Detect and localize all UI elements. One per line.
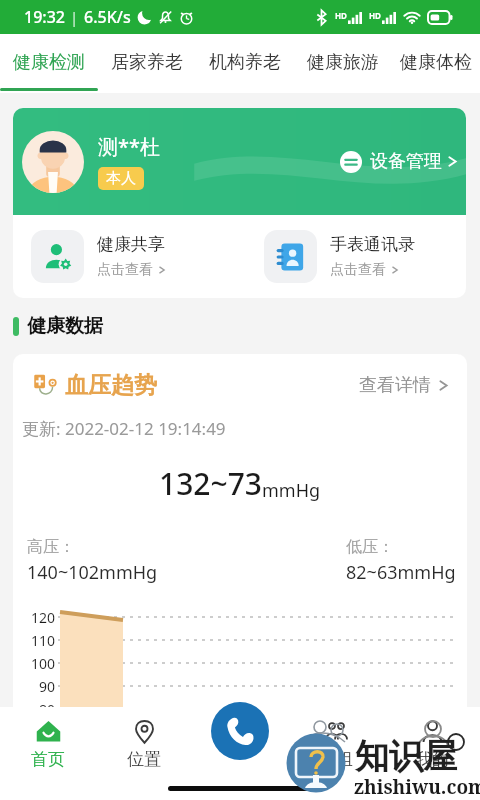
staticText: 132~73	[159, 463, 262, 504]
staticText: 首页	[31, 749, 65, 770]
staticText: 测**杜	[98, 133, 160, 160]
button[interactable]: 居家养老	[98, 34, 196, 93]
staticText: 点击查看	[97, 261, 153, 279]
staticText: 居家养老	[111, 51, 183, 74]
staticText: zhishiwu.com	[354, 774, 480, 800]
staticText: 健康检测	[13, 51, 85, 74]
button[interactable]: 位置	[96, 707, 192, 777]
staticText: 19:32	[24, 6, 65, 28]
staticText: 位置	[127, 749, 161, 770]
button[interactable]: 设备管理	[340, 150, 458, 173]
staticText: 更新: 2022-02-12 19:14:49	[22, 417, 226, 440]
staticText: 90	[39, 677, 56, 696]
staticText: 我的	[415, 749, 449, 770]
staticText: HD	[335, 10, 347, 21]
staticText: 手表通讯录	[330, 234, 415, 255]
staticText: 6.5K/s	[84, 6, 131, 28]
button[interactable]: 机构养老	[196, 34, 294, 93]
staticText: 查看详情	[359, 374, 431, 397]
staticText: 82~63mmHg	[346, 560, 456, 585]
staticText: 血压趋势	[65, 371, 157, 400]
button[interactable]: Call	[211, 702, 269, 760]
button[interactable]: 我的	[384, 707, 480, 777]
staticText: HD	[369, 10, 381, 21]
staticText: 80	[39, 700, 56, 719]
button[interactable]: 健康旅游	[294, 34, 392, 93]
staticText: 110	[31, 631, 56, 650]
staticText: 140~102mmHg	[27, 560, 158, 585]
button[interactable]: 健康检测	[0, 34, 98, 93]
staticText: 健康旅游	[307, 51, 379, 74]
staticText: 高压：	[27, 537, 75, 557]
button[interactable]: 健康共享	[31, 215, 239, 298]
staticText: 120	[31, 608, 56, 627]
staticText: 设备管理	[370, 150, 442, 173]
button[interactable]: 首页	[0, 707, 96, 777]
staticText: 点击查看	[330, 261, 386, 279]
button[interactable]: 查看详情	[359, 374, 448, 397]
button[interactable]: 健康体检	[392, 34, 480, 93]
button[interactable]: 群组	[288, 707, 384, 777]
staticText: 100	[31, 654, 56, 673]
staticText: 低压：	[346, 537, 394, 557]
staticText: 健康数据	[27, 314, 103, 338]
staticText: 健康共享	[97, 234, 165, 255]
staticText: 本人	[106, 169, 136, 188]
button[interactable]: 手表通讯录	[264, 215, 466, 298]
staticText: 机构养老	[209, 51, 281, 74]
staticText: 健康体检	[400, 51, 472, 74]
staticText: |	[70, 7, 79, 27]
staticText: mmHg	[262, 478, 321, 503]
staticText: 知识屋	[355, 735, 457, 778]
staticText: 群组	[319, 749, 353, 770]
